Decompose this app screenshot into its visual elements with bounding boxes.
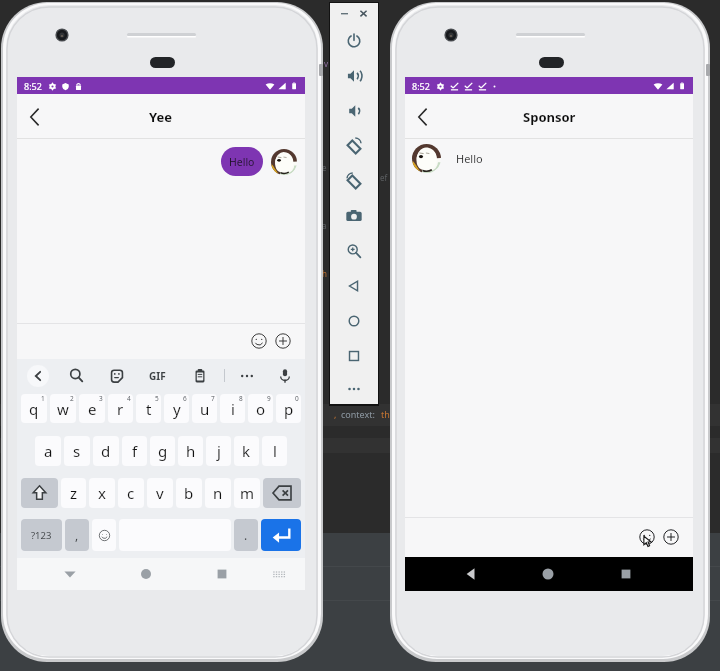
staticText: a [44,441,53,461]
staticText: ?123 [31,529,52,542]
button[interactable]: Overview [330,338,378,373]
button[interactable]: y [164,394,189,423]
button[interactable]: t [136,394,161,423]
button[interactable]: o [248,394,273,423]
button[interactable]: i [220,394,245,423]
button[interactable]: Close [358,8,369,19]
button[interactable]: Rotate right [330,163,378,198]
button[interactable]: Rotate left [330,128,378,163]
button[interactable]: q [21,394,47,423]
staticText: 0 [295,394,299,403]
button[interactable]: More [330,373,378,404]
staticText: . [244,527,248,543]
button[interactable]: Recents [615,563,637,585]
button[interactable]: e [79,394,105,423]
button[interactable]: f [122,436,147,466]
staticText: x [98,483,106,503]
button[interactable]: n [205,478,231,508]
button[interactable]: b [176,478,202,508]
staticText: j [217,441,221,461]
button[interactable]: Emoji [92,519,116,551]
button[interactable]: h [178,436,203,466]
button[interactable]: Home [330,303,378,338]
button[interactable]: Minimize [339,8,350,19]
staticText: m [240,483,255,503]
staticText: s [73,441,81,461]
button[interactable]: r [108,394,133,423]
staticText: 6 [183,394,187,403]
button[interactable]: ?123 [21,519,62,551]
staticText: v [324,58,329,69]
staticText: 8 [239,394,243,403]
staticText: k [242,441,251,461]
staticText: i [231,399,235,419]
staticText: t [146,399,152,419]
staticText: , [334,408,337,420]
button[interactable]: d [93,436,119,466]
button[interactable]: Back [20,102,50,132]
button[interactable]: k [234,436,259,466]
button[interactable]: Back [60,564,80,584]
button[interactable]: m [234,478,260,508]
button[interactable]: u [192,394,217,423]
staticText: n [213,483,223,503]
button[interactable]: j [206,436,231,466]
button[interactable]: Add [274,332,292,350]
button[interactable]: a [35,436,61,466]
button[interactable]: Hello [405,139,693,177]
staticText: 5 [155,394,159,403]
staticText: 9 [267,394,271,403]
button[interactable]: More options [239,368,255,384]
staticText: l [273,441,277,461]
staticText: ef [380,172,388,183]
staticText: 7 [211,394,215,403]
button[interactable]: Search [68,367,85,384]
button[interactable]: Back [460,563,482,585]
button[interactable]: Volume up [330,58,378,93]
button[interactable]: Back [330,268,378,303]
staticText: 8:52 [24,80,42,92]
button[interactable]: x [89,478,115,508]
staticText: f [132,441,138,461]
staticText: d [101,441,111,461]
button[interactable]: Back [408,102,438,132]
button[interactable]: l [262,436,287,466]
staticText: b [184,483,194,503]
staticText: GIF [149,369,166,383]
button[interactable]: v [147,478,173,508]
button[interactable]: Back [27,365,49,387]
button[interactable]: Screenshot [330,198,378,233]
button[interactable]: Volume down [330,93,378,128]
button[interactable]: w [50,394,76,423]
button[interactable]: Emoji [250,332,268,350]
button[interactable]: . [234,519,258,551]
button[interactable]: Zoom [330,233,378,268]
staticText: h [186,441,196,461]
button[interactable]: Shift [21,478,58,508]
button[interactable]: s [64,436,90,466]
button[interactable]: Home [136,564,156,584]
staticText: 8:52 [412,80,430,92]
button[interactable]: g [150,436,175,466]
button[interactable]: Backspace [263,478,301,508]
button[interactable]: Enter [261,519,301,551]
button[interactable]: Emoji [638,528,656,546]
button[interactable]: Clipboard [192,368,208,384]
button[interactable]: Home [537,563,559,585]
staticText: 4 [127,394,131,403]
button[interactable]: Voice input [277,368,293,384]
button[interactable]: Add [662,528,680,546]
button[interactable]: c [118,478,144,508]
button[interactable]: Power [330,23,378,58]
button[interactable]: , [65,519,89,551]
button[interactable]: Recents [212,564,232,584]
button[interactable]: Hello [221,147,263,176]
staticText: th [381,408,390,420]
button[interactable]: Stickers [109,368,125,384]
button[interactable]: z [61,478,86,508]
button[interactable]: Switch keyboard [270,565,288,583]
staticText: u [200,399,210,419]
staticText: p [284,399,294,419]
button[interactable]: p [276,394,301,423]
